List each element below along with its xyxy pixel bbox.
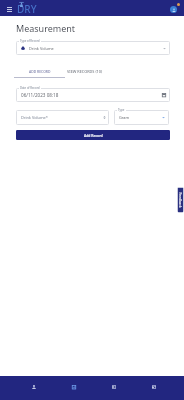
button[interactable]: Feedback [177,187,183,212]
staticText: Type of Record [20,39,40,43]
staticText: Measurement [16,22,76,34]
button[interactable]: Drink Volume* [16,110,109,125]
staticText: Drink Volume* [21,115,48,120]
button[interactable]: Gram [114,110,169,125]
button[interactable]: Profile [15,376,53,400]
staticText: ADD RECORD [29,69,51,74]
staticText: Feedback [177,192,182,208]
button[interactable]: ADD RECORD [14,65,65,78]
button[interactable]: Dashboard [135,376,173,400]
button[interactable]: Records [95,376,133,400]
button[interactable]: Drink Volume [16,41,170,55]
staticText: VIEW RECORDS (10) [67,69,103,74]
button[interactable]: Account [170,3,180,13]
button[interactable]: Add Record [16,130,170,140]
button[interactable]: VIEW RECORDS (10) [65,65,104,78]
staticText: Date of Record [20,86,40,90]
staticText: Gram [119,115,130,120]
staticText: Drink Volume [29,46,54,51]
button[interactable]: Reports [55,376,93,400]
staticText: 06/11/2023 08:18 [21,92,59,98]
staticText: Add Record [84,133,103,138]
button[interactable]: Menu [1,0,18,16]
button[interactable]: 06/11/2023 08:18 [16,88,170,102]
staticText: DRY [17,2,37,16]
button[interactable]: DRY [17,0,37,16]
staticText: Type [118,108,125,112]
